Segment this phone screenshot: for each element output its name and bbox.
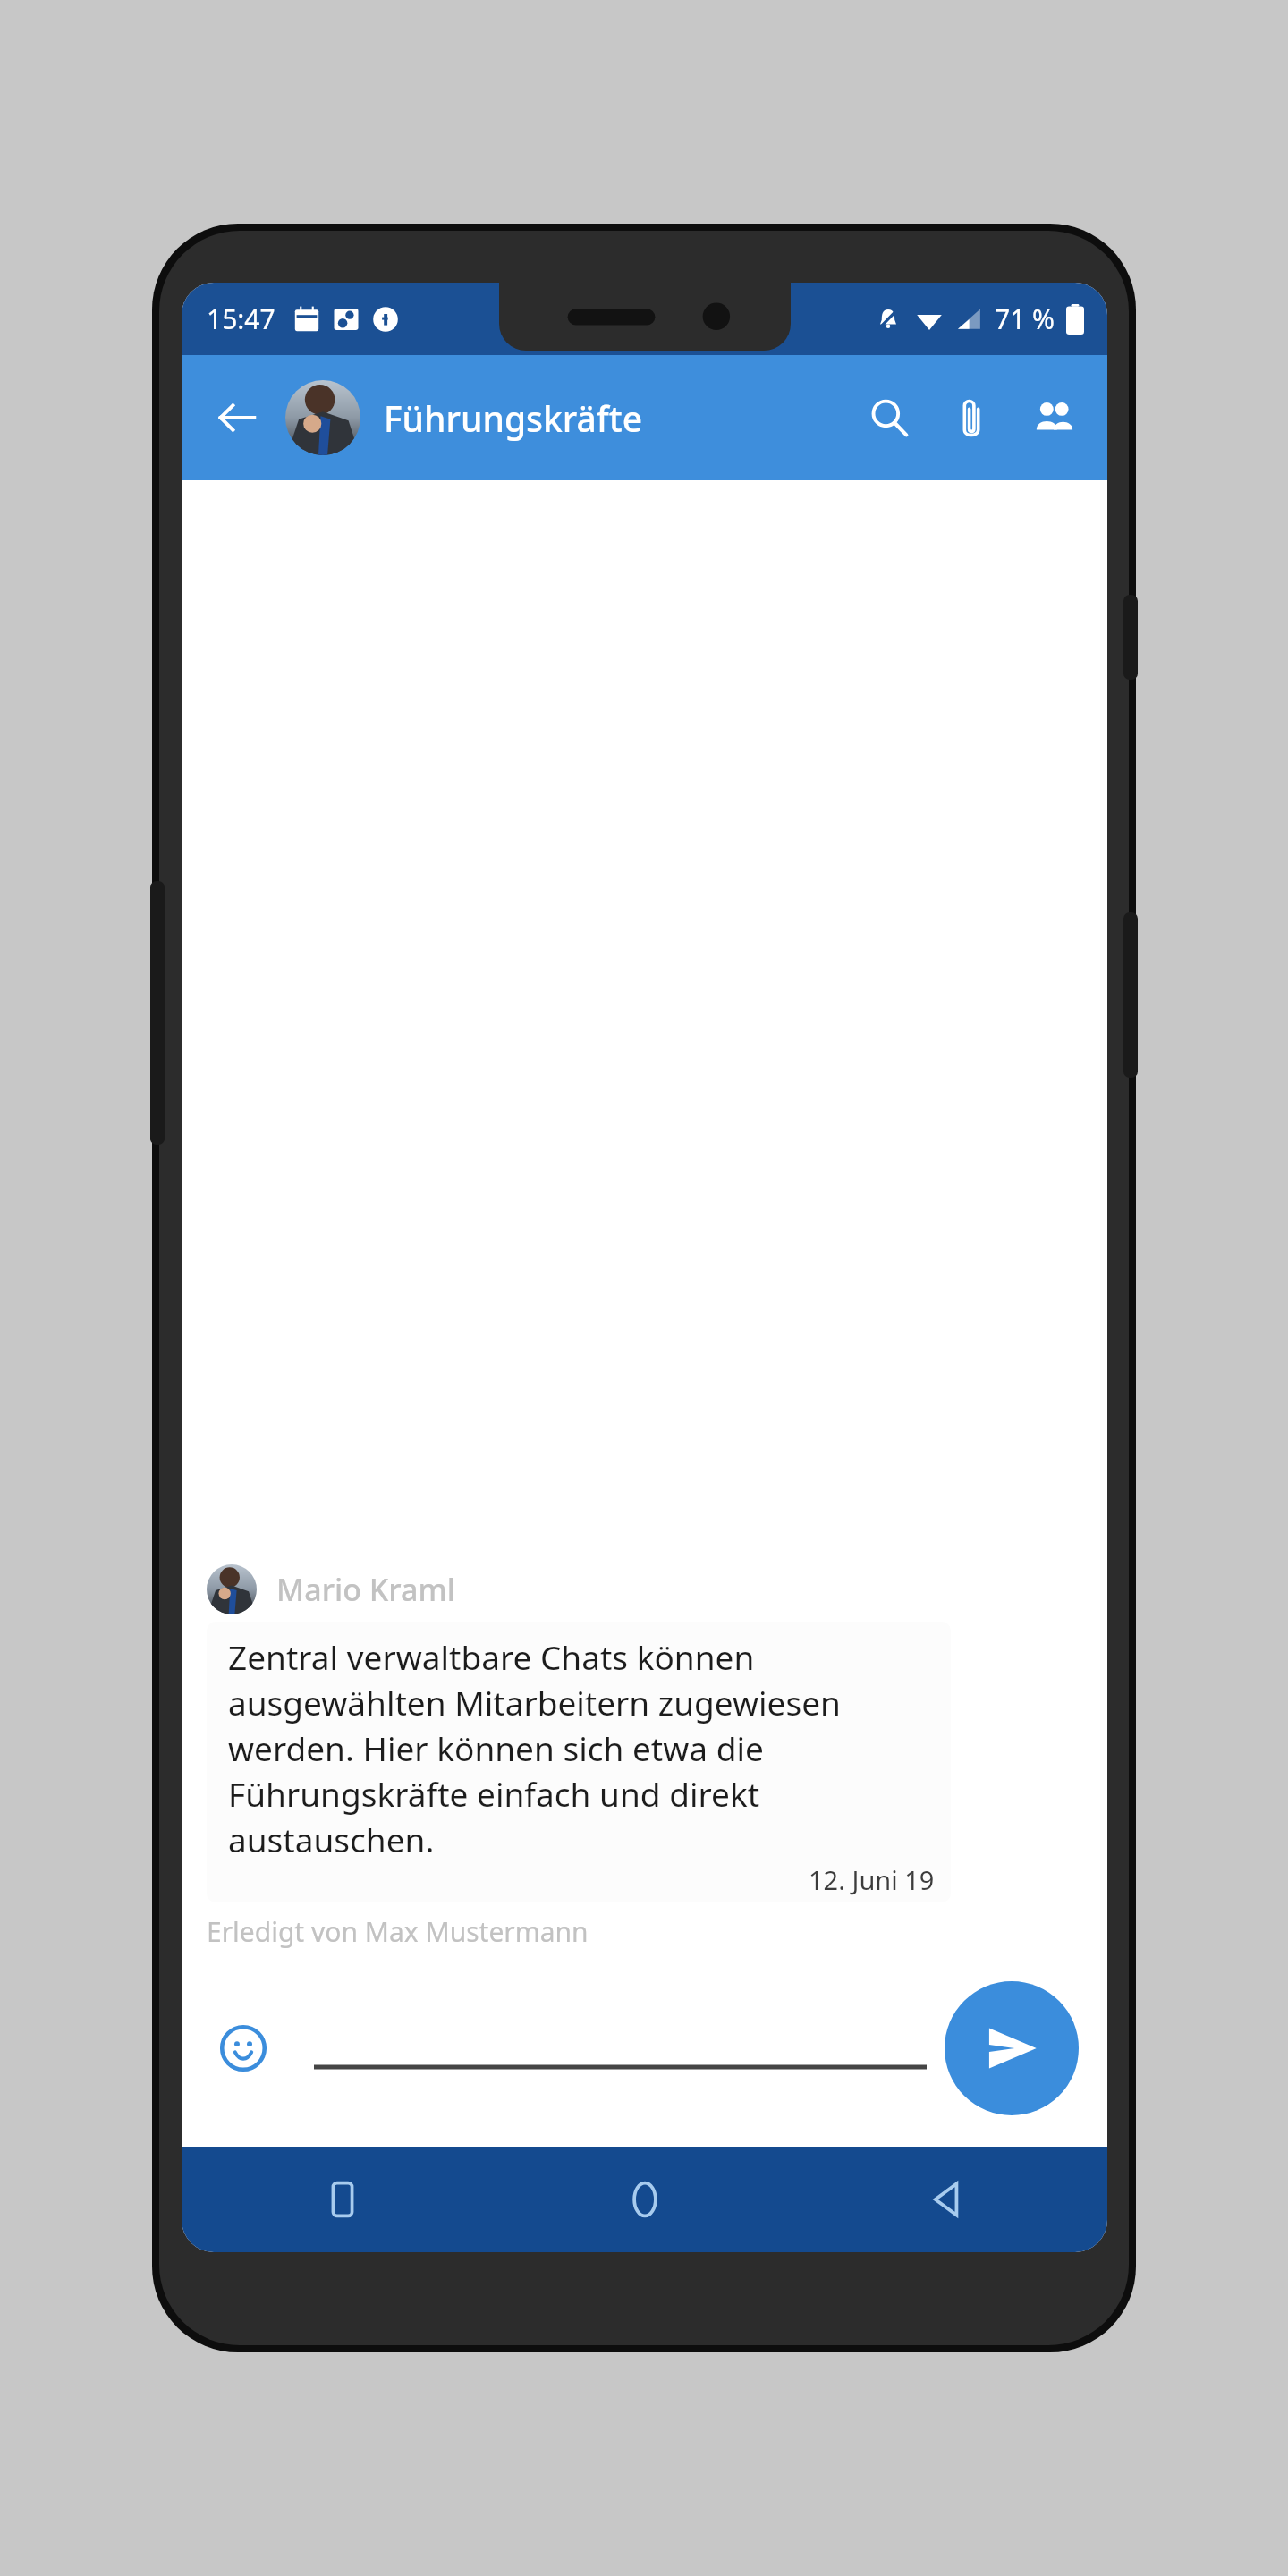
staticText: Erledigt von Max Mustermann [207,1913,589,1950]
staticText: 15:47 [207,301,275,337]
staticText: Führungskräfte [384,394,643,442]
button[interactable]: Home [600,2155,690,2244]
button[interactable]: Attach file [930,377,1013,459]
staticText: 12. Juni 19 [809,1862,935,1897]
button[interactable]: Back [902,2155,991,2244]
button[interactable]: Members [1013,377,1095,459]
staticText: 71 % [995,301,1055,337]
button[interactable]: Zentral verwaltbare Chats können ausgewä… [207,1622,951,1902]
staticText: Mario Kraml [276,1569,455,1610]
button[interactable]: Send [945,1981,1079,2115]
button[interactable]: Search [848,377,930,459]
button[interactable]: Back [198,378,276,457]
button[interactable] [314,2017,927,2080]
button[interactable]: Recent apps [298,2155,387,2244]
button[interactable]: Insert emoji [203,2008,284,2089]
staticText: Zentral verwaltbare Chats können ausgewä… [228,1634,935,1862]
